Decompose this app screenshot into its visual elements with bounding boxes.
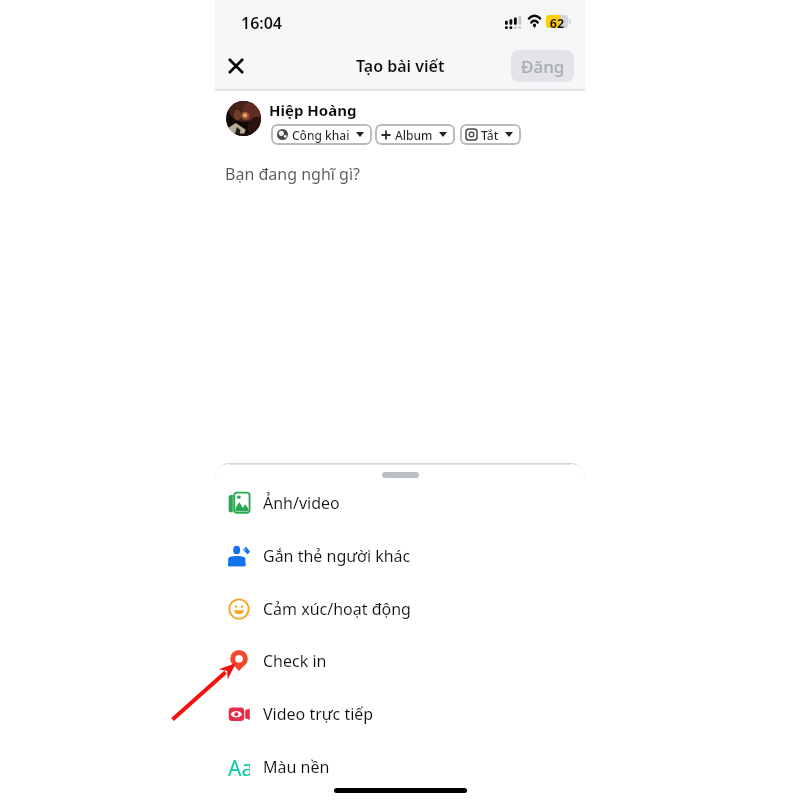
staticText: Aa — [228, 754, 250, 776]
button[interactable]: Gắn thẻ người khác — [215, 530, 585, 582]
staticText: Album — [395, 127, 433, 143]
staticText: Bạn đang nghĩ gì? — [225, 163, 360, 185]
button[interactable]: Profile picture — [226, 101, 261, 136]
staticText: Tắt — [481, 127, 499, 143]
button[interactable]: Album — [375, 124, 455, 145]
button[interactable]: Tắt — [460, 124, 521, 145]
staticText: Video trực tiếp — [263, 703, 374, 725]
staticText: Công khai — [292, 127, 350, 143]
staticText: Đăng — [521, 55, 565, 78]
staticText: Màu nền — [263, 756, 330, 778]
button[interactable]: Đăng — [511, 50, 574, 82]
button[interactable]: Ảnh/video — [215, 477, 585, 529]
button[interactable]: Công khai — [271, 124, 372, 145]
button[interactable]: Check in — [215, 635, 585, 687]
staticText: Ảnh/video — [263, 492, 340, 514]
staticText: Check in — [263, 650, 327, 672]
staticText: Gắn thẻ người khác — [263, 545, 411, 567]
button[interactable]: Close — [217, 47, 255, 85]
staticText: Tạo bài viết — [356, 55, 445, 77]
button[interactable]: Aa — [215, 741, 585, 793]
button[interactable]: Cảm xúc/hoạt động — [215, 583, 585, 635]
staticText: 62 — [546, 15, 568, 32]
button[interactable]: Video trực tiếp — [215, 688, 585, 740]
staticText: Cảm xúc/hoạt động — [263, 598, 411, 620]
staticText: 16:04 — [241, 12, 283, 34]
staticText: Hiệp Hoàng — [269, 100, 357, 120]
